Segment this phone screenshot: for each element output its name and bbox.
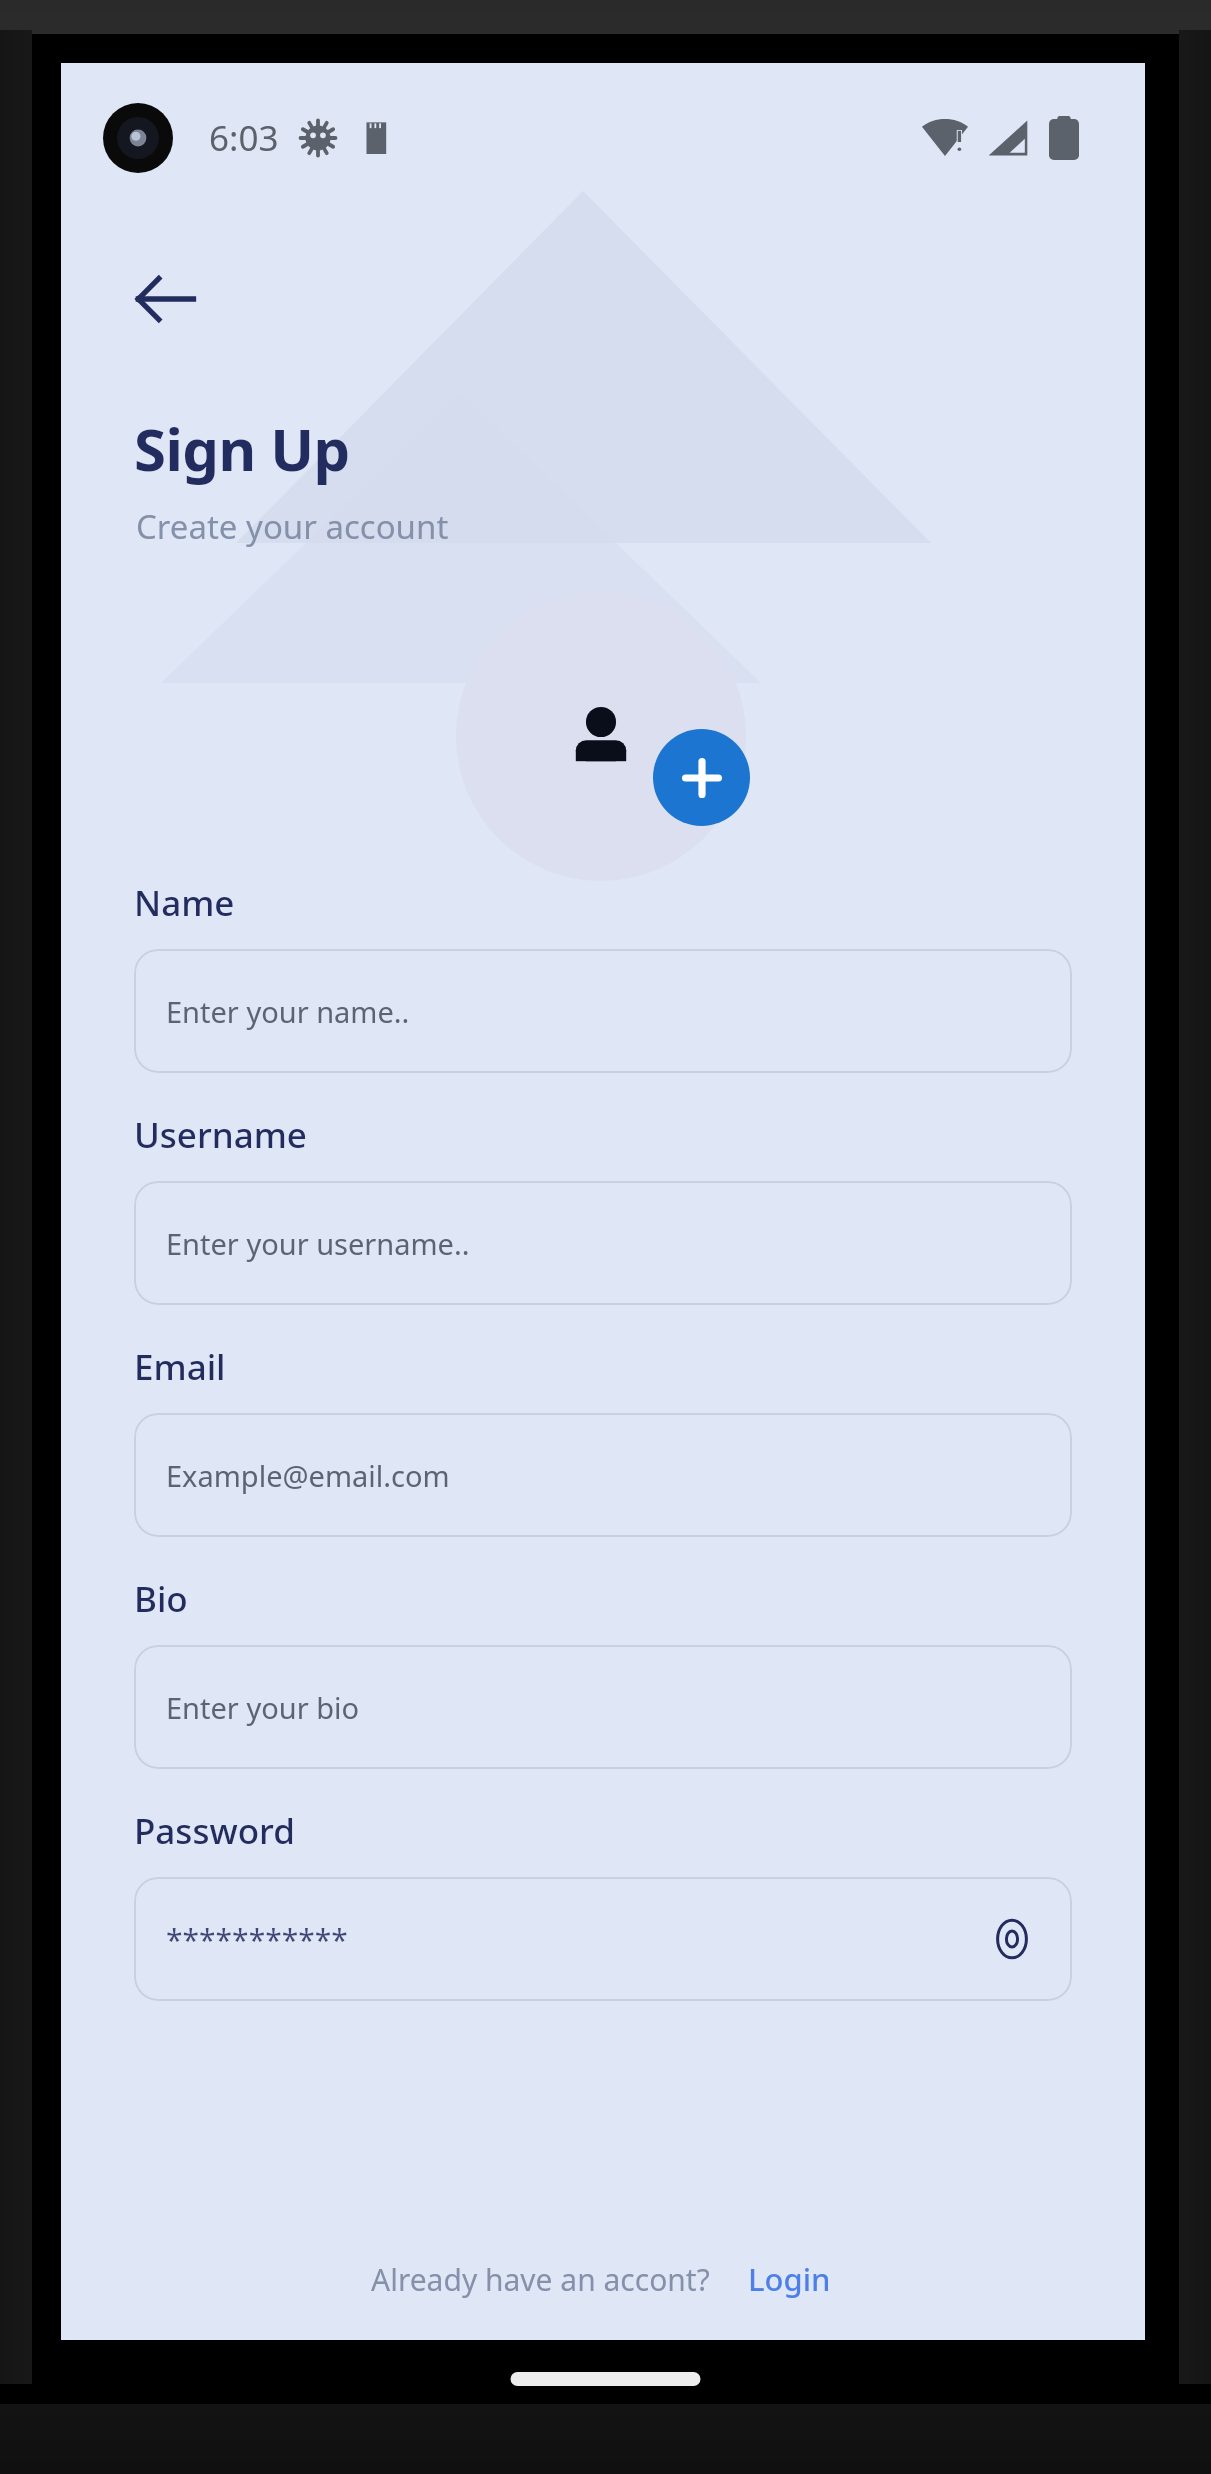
button[interactable]: Enter your name.. — [134, 949, 1072, 1073]
button[interactable]: Enter your bio — [134, 1645, 1072, 1769]
staticText: Example@email.com — [166, 1456, 1040, 1495]
staticText: Enter your name.. — [166, 992, 1040, 1031]
staticText: Bio — [134, 1575, 188, 1623]
staticText: 6:03 — [209, 114, 279, 162]
staticText: Name — [134, 879, 235, 927]
button[interactable]: Example@email.com — [134, 1413, 1072, 1537]
staticText: *********** — [166, 1919, 984, 1960]
staticText: Sign Up — [134, 409, 350, 488]
staticText: Create your account — [136, 504, 449, 549]
button[interactable]: Profile photo — [456, 591, 746, 881]
staticText: Username — [134, 1111, 307, 1159]
staticText: Password — [134, 1807, 295, 1855]
button[interactable]: *********** — [134, 1877, 1072, 2001]
button[interactable]: Add photo — [653, 729, 750, 826]
staticText: Enter your bio — [166, 1688, 1040, 1727]
staticText: Email — [134, 1343, 226, 1391]
staticText: Enter your username.. — [166, 1224, 1040, 1263]
staticText: Already have an accont? — [371, 2259, 710, 2300]
button[interactable]: Enter your username.. — [134, 1181, 1072, 1305]
button[interactable]: Toggle password visibility — [984, 1911, 1040, 1967]
button[interactable]: Back — [117, 251, 213, 347]
staticText: Login — [748, 2258, 831, 2300]
button[interactable]: Login — [744, 2254, 835, 2304]
